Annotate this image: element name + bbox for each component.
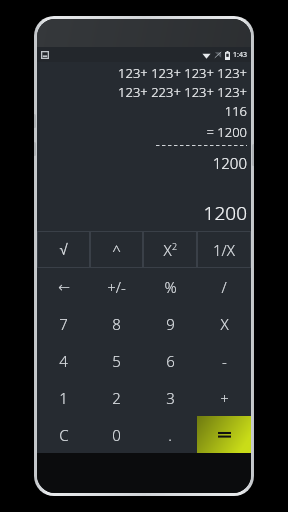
staticText: 3 [166,388,175,408]
button[interactable]: 5 [90,342,143,379]
button[interactable]: +/- [90,268,143,305]
button[interactable]: 9 [143,305,197,342]
staticText: 0 [112,425,121,445]
button[interactable]: 8 [90,305,143,342]
staticText: X [163,240,172,260]
button[interactable]: + [197,379,251,416]
staticText: 6 [166,351,175,371]
button[interactable]: - [197,342,251,379]
button[interactable]: 2 [90,379,143,416]
button[interactable]: ^ [90,231,143,268]
button[interactable]: 1 [37,379,90,416]
staticText: 8 [112,314,121,334]
button[interactable]: 7 [37,305,90,342]
button[interactable]: . [143,416,197,453]
staticText: 2 [112,388,121,408]
button[interactable]: √ [37,231,90,268]
staticText: C [59,425,69,445]
staticText: 9 [166,314,175,334]
staticText: +/- [107,277,126,297]
button[interactable]: X [197,305,251,342]
button[interactable]: % [143,268,197,305]
button[interactable]: 4 [37,342,90,379]
staticText: + [220,388,229,408]
staticText: 123+ 223+ 123+ 123+ [41,83,247,101]
button[interactable]: Backspace [37,268,90,305]
staticText: % [164,277,177,297]
staticText: = 1200 [41,123,247,141]
staticText: 123+ 123+ 123+ 123+ [41,64,247,82]
staticText: 2 [172,240,178,252]
staticText: ^ [112,240,121,260]
button[interactable]: C [37,416,90,453]
button[interactable] [197,416,251,453]
staticText: 7 [59,314,68,334]
button[interactable]: 6 [143,342,197,379]
staticText: 4 [59,351,68,371]
staticText: 5 [112,351,121,371]
staticText: 1200 [41,200,247,226]
staticText: 116 [41,102,247,120]
staticText: ← [58,279,70,295]
staticText: X [220,314,229,334]
staticText: 1 [59,388,68,408]
staticText: 1/X [213,240,235,260]
staticText: 1200 [41,153,247,173]
staticText: / [221,277,227,297]
button[interactable]: X [143,231,197,268]
staticText: - [222,351,227,371]
button[interactable]: 1/X [197,231,251,268]
staticText: √ [59,241,68,258]
button[interactable]: / [197,268,251,305]
button[interactable]: 3 [143,379,197,416]
staticText: 1:43 [233,50,247,60]
staticText: . [168,425,172,445]
button[interactable]: 0 [90,416,143,453]
